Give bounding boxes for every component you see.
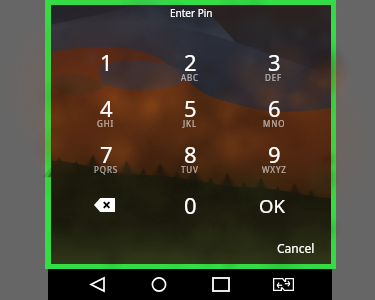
- staticText: 9: [268, 139, 281, 169]
- staticText: 7: [100, 139, 113, 169]
- staticText: OK: [259, 193, 285, 218]
- button[interactable]: 5: [148, 93, 232, 139]
- staticText: JKL: [183, 118, 198, 129]
- staticText: 6: [268, 93, 281, 123]
- button[interactable]: OK: [232, 185, 316, 225]
- button[interactable]: 6: [232, 93, 316, 139]
- staticText: ABC: [181, 72, 200, 83]
- button[interactable]: Recent apps: [199, 269, 243, 300]
- staticText: GHI: [97, 118, 115, 129]
- button[interactable]: 9: [232, 139, 316, 185]
- staticText: 1: [100, 47, 113, 77]
- button[interactable]: 3: [232, 47, 316, 93]
- button[interactable]: 7: [64, 139, 148, 185]
- button[interactable]: Split screen: [261, 269, 305, 300]
- staticText: MNO: [263, 118, 286, 129]
- button[interactable]: 0: [148, 185, 232, 225]
- button[interactable]: Home: [137, 269, 181, 300]
- staticText: 0: [184, 190, 197, 220]
- staticText: TUV: [181, 164, 199, 175]
- button[interactable]: 1: [64, 47, 148, 93]
- staticText: WXYZ: [262, 164, 287, 175]
- staticText: DEF: [265, 72, 283, 83]
- staticText: Cancel: [277, 240, 315, 256]
- button[interactable]: 8: [148, 139, 232, 185]
- staticText: 3: [268, 47, 281, 77]
- staticText: 5: [184, 93, 197, 123]
- staticText: 4: [100, 93, 113, 123]
- staticText: 2: [184, 47, 197, 77]
- staticText: PQRS: [94, 164, 119, 175]
- button[interactable]: Back: [75, 269, 119, 300]
- button[interactable]: 4: [64, 93, 148, 139]
- button[interactable]: 2: [148, 47, 232, 93]
- staticText: Enter Pin: [170, 6, 213, 20]
- button[interactable]: Cancel: [277, 240, 315, 256]
- staticText: 8: [184, 139, 197, 169]
- button[interactable]: Backspace: [64, 185, 148, 225]
